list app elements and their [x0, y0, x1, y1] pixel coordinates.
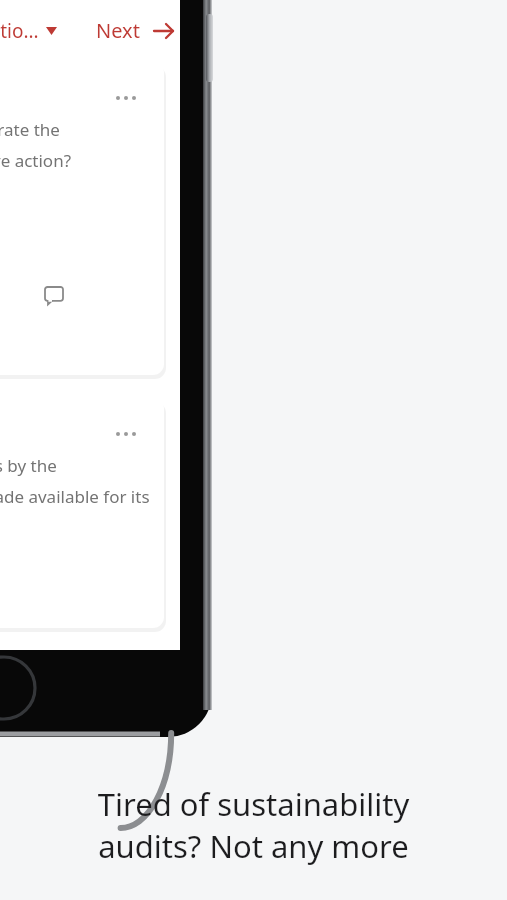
staticText: Expenditures by the organization over	[0, 454, 152, 477]
other: Power button	[206, 14, 213, 82]
button[interactable]: More options	[0, 398, 164, 628]
staticText: How do you rate the effectiveness of	[0, 118, 152, 141]
staticText: Next	[96, 17, 140, 44]
button[interactable]: Next	[90, 12, 181, 49]
staticText: Tired of sustainability audits? Not any …	[56, 783, 451, 867]
button[interactable]: Add comment	[40, 282, 68, 309]
button[interactable]: More options	[110, 424, 142, 444]
staticText: Evaluatio...	[0, 18, 39, 44]
button[interactable]: More options	[0, 62, 164, 375]
button[interactable]: Evaluatio...	[0, 14, 63, 48]
button[interactable]: More options	[110, 88, 142, 108]
staticText: this corrective action?	[0, 149, 72, 172]
staticText: the funds made available for its major	[0, 485, 152, 508]
